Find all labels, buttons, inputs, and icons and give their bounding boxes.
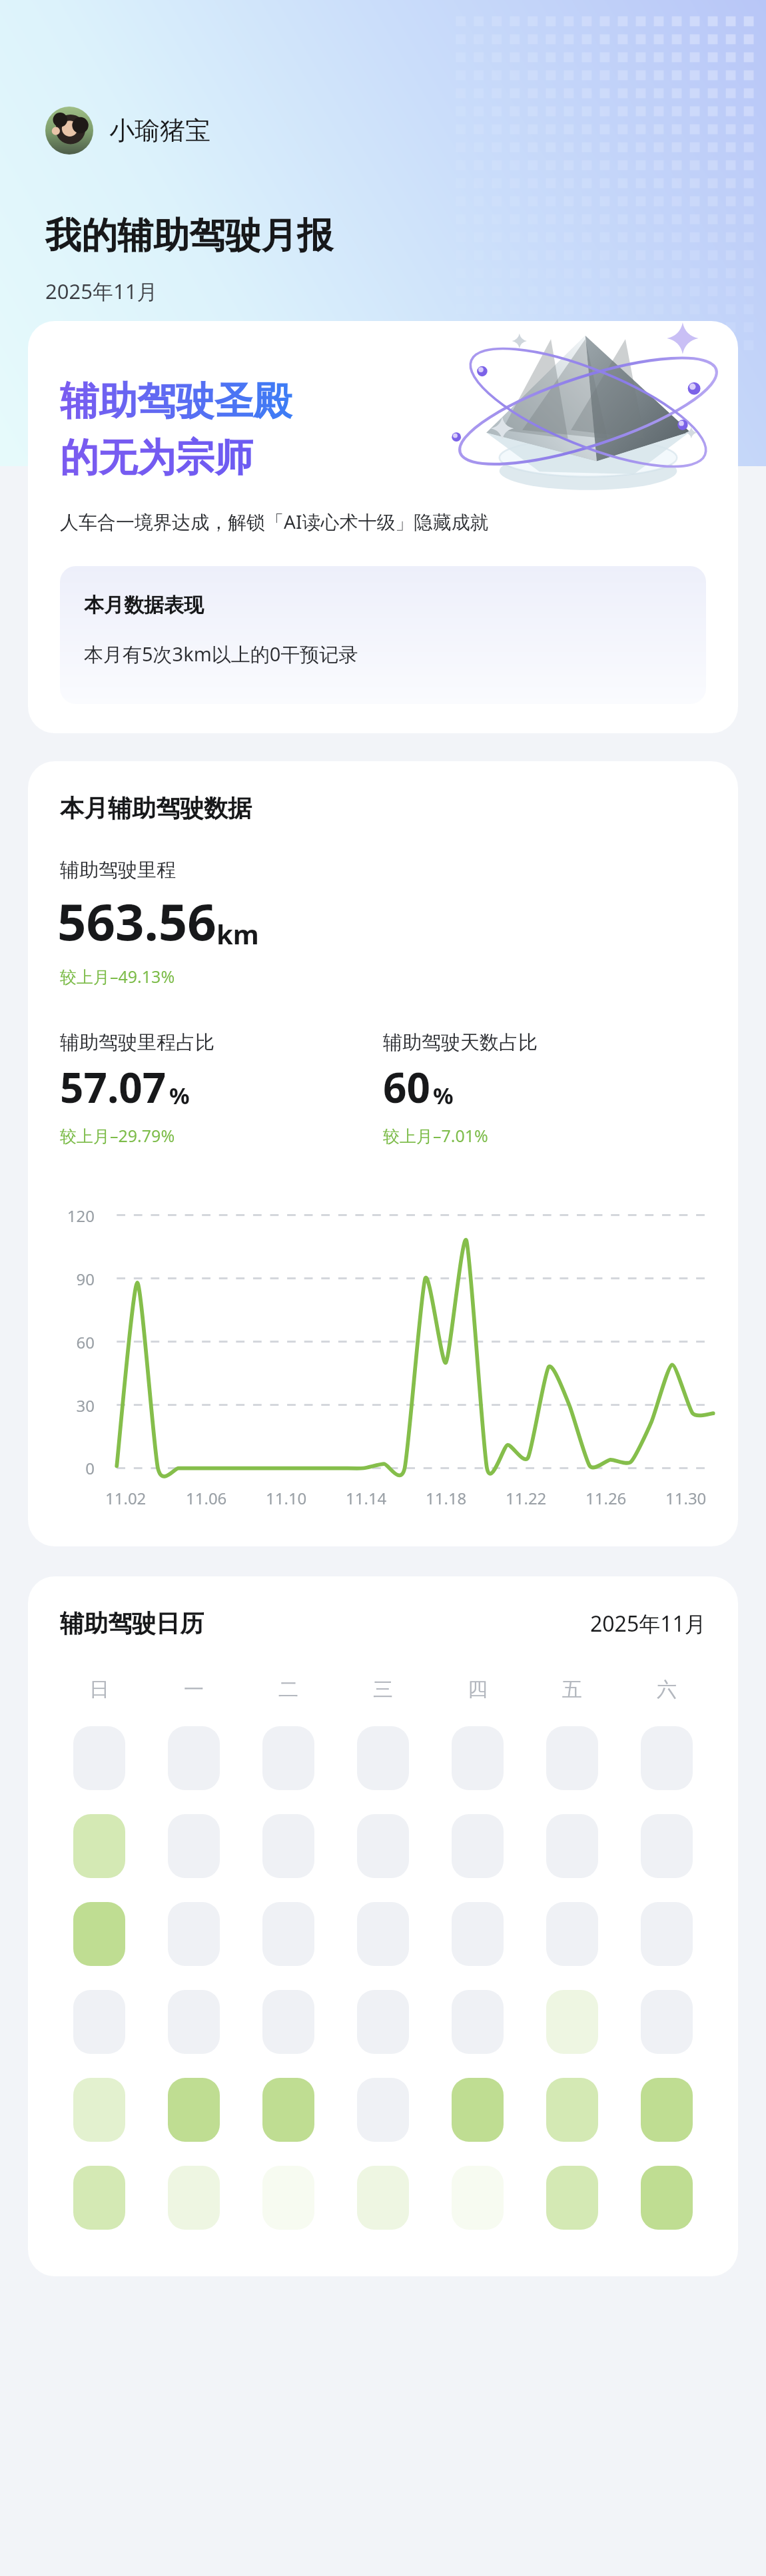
button[interactable] [452,1814,504,1878]
staticText: 本月有5次3km以上的0干预记录 [84,641,358,667]
button[interactable]: 本月辅助驾驶数据 [28,761,738,1546]
button[interactable] [641,2078,693,2142]
staticText: 57.07 [60,1059,167,1115]
staticText: 六 [657,1677,677,1702]
button[interactable] [452,1902,504,1966]
button[interactable] [73,1990,125,2054]
staticText: 人车合一境界达成，解锁「AI读心术十级」隐藏成就 [60,509,489,534]
button[interactable] [546,1726,598,1790]
staticText: 辅助驾驶里程 [60,858,176,882]
staticText: % [169,1080,190,1111]
button[interactable] [73,1902,125,1966]
staticText: 较上月–49.13% [60,965,175,988]
button[interactable] [168,1902,220,1966]
button[interactable]: 本月数据表现 [60,566,706,704]
button[interactable] [357,1814,409,1878]
button[interactable]: 小瑜猪宝 [45,107,210,155]
button[interactable] [546,1902,598,1966]
staticText: 本月辅助驾驶数据 [60,793,252,823]
button[interactable] [168,1990,220,2054]
button[interactable] [546,2078,598,2142]
button[interactable] [357,1990,409,2054]
button[interactable] [262,1902,314,1966]
button[interactable] [73,1726,125,1790]
staticText: 辅助驾驶圣殿 [60,377,292,426]
button[interactable] [357,2078,409,2142]
button[interactable] [73,2078,125,2142]
staticText: 120 [67,1205,95,1227]
staticText: 我的辅助驾驶月报 [45,213,333,258]
button[interactable] [452,2078,504,2142]
button[interactable] [262,1814,314,1878]
button[interactable] [357,1726,409,1790]
button[interactable] [168,2166,220,2230]
staticText: 日 [89,1677,109,1702]
button[interactable] [168,1814,220,1878]
staticText: 11.26 [585,1487,627,1509]
staticText: 11.10 [266,1487,307,1509]
staticText: 30 [76,1395,95,1417]
staticText: 二 [278,1677,298,1702]
button[interactable] [452,1990,504,2054]
button[interactable] [641,1990,693,2054]
staticText: 60 [76,1331,95,1353]
button[interactable] [73,2166,125,2230]
staticText: 11.06 [186,1487,227,1509]
staticText: 五 [562,1677,582,1702]
button[interactable]: 辅助驾驶日历 [28,1576,738,2276]
button[interactable] [452,2166,504,2230]
staticText: 60 [383,1059,430,1115]
staticText: 11.30 [665,1487,707,1509]
staticText: 小瑜猪宝 [109,115,210,147]
other: 成就徽章 [445,321,731,494]
button[interactable] [641,1726,693,1790]
staticText: 辅助驾驶日历 [60,1608,204,1638]
staticText: 563.56 [57,886,216,956]
staticText: % [433,1080,454,1111]
staticText: 较上月–29.79% [60,1124,175,1147]
staticText: 11.14 [346,1487,387,1509]
button[interactable] [641,2166,693,2230]
staticText: 较上月–7.01% [383,1124,488,1147]
button[interactable] [357,1902,409,1966]
staticText: 三 [373,1677,393,1702]
staticText: 11.02 [105,1487,147,1509]
button[interactable] [73,1814,125,1878]
button[interactable] [357,2166,409,2230]
button[interactable] [641,1814,693,1878]
button[interactable] [546,1814,598,1878]
staticText: km [216,916,259,952]
button[interactable] [262,2078,314,2142]
button[interactable] [546,2166,598,2230]
staticText: 2025年11月 [590,1609,706,1638]
button[interactable] [262,1726,314,1790]
button[interactable] [262,1990,314,2054]
staticText: 辅助驾驶里程占比 [60,1030,214,1055]
button[interactable] [168,2078,220,2142]
button[interactable] [452,1726,504,1790]
button[interactable] [546,1990,598,2054]
staticText: 的无为宗师 [60,434,253,482]
button[interactable] [641,1902,693,1966]
staticText: 11.22 [506,1487,547,1509]
staticText: 11.18 [426,1487,467,1509]
staticText: 90 [76,1268,95,1290]
staticText: 辅助驾驶天数占比 [383,1030,538,1055]
button[interactable] [168,1726,220,1790]
staticText: 本月数据表现 [84,593,204,618]
staticText: 2025年11月 [45,277,158,305]
button[interactable] [262,2166,314,2230]
staticText: 四 [468,1677,488,1702]
staticText: 一 [184,1677,204,1702]
staticText: 0 [85,1457,95,1479]
button[interactable]: 成就徽章 [28,321,738,733]
